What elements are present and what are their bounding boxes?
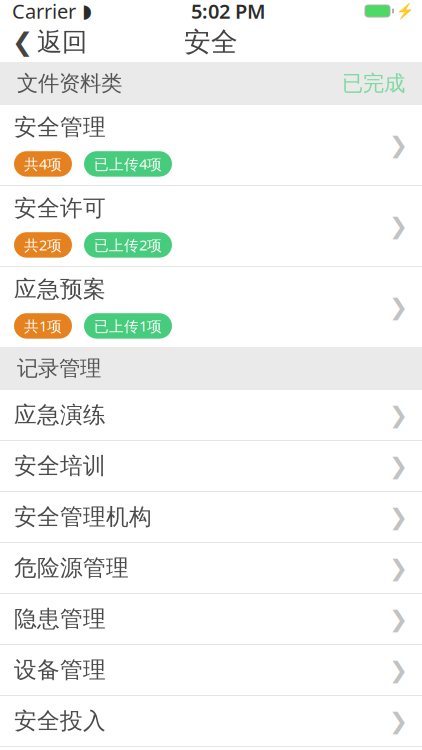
staticText: 安全投入: [14, 707, 106, 735]
staticText: ❯: [389, 504, 408, 530]
staticText: ❯: [389, 708, 408, 734]
button[interactable]: 危险源管理: [0, 543, 422, 593]
staticText: ❯: [389, 132, 408, 158]
button[interactable]: 安全管理: [0, 105, 422, 185]
staticText: 文件资料类: [17, 70, 122, 97]
staticText: ❮: [12, 28, 33, 56]
button[interactable]: ❮: [0, 22, 99, 62]
staticText: 共1项: [24, 316, 62, 336]
staticText: ❯: [389, 606, 408, 632]
staticText: 安全许可: [14, 194, 106, 222]
staticText: ❯: [389, 213, 408, 239]
staticText: 安全培训: [14, 452, 106, 480]
staticText: 已上传2项: [94, 235, 162, 255]
staticText: ❯: [389, 294, 408, 320]
button[interactable]: 安全许可: [0, 186, 422, 266]
staticText: Carrier: [12, 0, 76, 24]
staticText: ❯: [389, 453, 408, 479]
staticText: 安全管理机构: [14, 503, 152, 531]
staticText: 已上传1项: [94, 316, 162, 336]
staticText: 设备管理: [14, 656, 106, 684]
staticText: ◗: [82, 0, 92, 22]
button[interactable]: 应急演练: [0, 390, 422, 440]
staticText: ❯: [389, 402, 408, 428]
button[interactable]: 隐患管理: [0, 594, 422, 644]
staticText: 记录管理: [17, 355, 101, 382]
staticText: ❯: [389, 555, 408, 581]
staticText: 已上传4项: [94, 154, 162, 174]
button[interactable]: 安全投入: [0, 696, 422, 746]
button[interactable]: 设备管理: [0, 645, 422, 695]
staticText: 5:02 PM: [191, 0, 266, 24]
staticText: 安全管理: [14, 113, 106, 141]
button[interactable]: 安全管理机构: [0, 492, 422, 542]
staticText: ❯: [389, 657, 408, 683]
button[interactable]: 应急预案: [0, 267, 422, 347]
staticText: 已完成: [342, 70, 405, 97]
staticText: 隐患管理: [14, 605, 106, 633]
staticText: 危险源管理: [14, 554, 129, 582]
staticText: 应急预案: [14, 275, 106, 303]
staticText: 返回: [37, 26, 87, 57]
staticText: 共4项: [24, 154, 62, 174]
button[interactable]: 安全培训: [0, 441, 422, 491]
staticText: ⚡: [396, 3, 414, 19]
staticText: 安全: [184, 26, 238, 58]
staticText: 共2项: [24, 235, 62, 255]
staticText: 应急演练: [14, 401, 106, 429]
